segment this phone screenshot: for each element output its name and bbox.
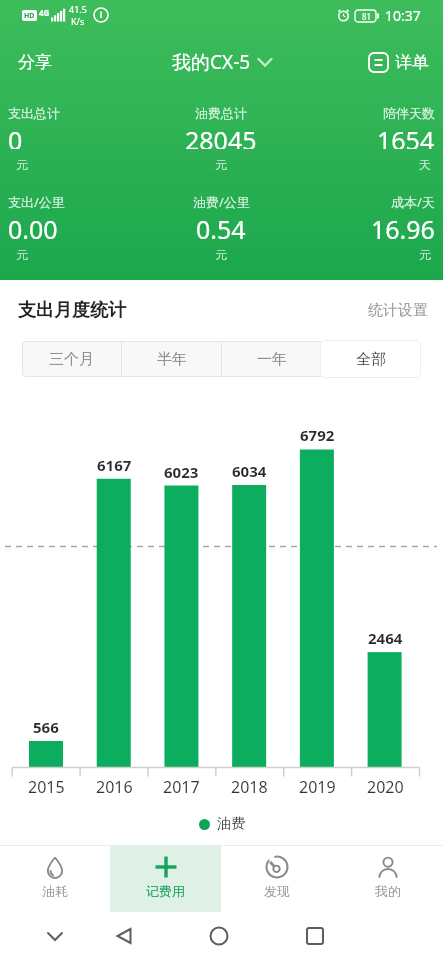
staticText: 6792 [300, 425, 335, 445]
button[interactable] [110, 912, 221, 960]
button[interactable]: 我的 [332, 846, 443, 912]
staticText: 我的CX-5 [172, 49, 251, 75]
staticText: 566 [33, 717, 59, 737]
staticText: 陪伴天数 [383, 105, 435, 121]
staticText: 半年 [157, 350, 187, 369]
staticText: 2017 [163, 776, 200, 798]
staticText: 0.00 [8, 212, 58, 244]
button[interactable] [0, 912, 110, 960]
staticText: 6023 [164, 462, 199, 482]
staticText: 油费 [217, 815, 245, 833]
staticText: 2016 [96, 776, 133, 798]
staticText: 2020 [367, 776, 404, 798]
staticText: 分享 [18, 52, 52, 72]
staticText: 2015 [28, 776, 65, 798]
staticText: 元 [215, 157, 227, 172]
button[interactable]: 详单 [360, 44, 437, 80]
staticText: 记费用 [146, 883, 185, 899]
staticText: 6167 [97, 455, 132, 475]
staticText: 16.96 [371, 212, 435, 244]
button[interactable]: 三个月 [22, 341, 121, 377]
staticText: 28045 [185, 123, 257, 149]
staticText: 0.54 [196, 212, 246, 244]
staticText: 油费/公里 [193, 193, 250, 211]
staticText: 2018 [231, 776, 268, 798]
staticText: 元 [419, 247, 431, 262]
staticText: 1654 [377, 123, 435, 149]
button[interactable]: 我的CX-5 [172, 49, 272, 75]
staticText: 油耗 [42, 883, 68, 899]
button[interactable]: 记费用 [110, 846, 221, 912]
staticText: 支出总计 [8, 105, 60, 121]
staticText: K/s [71, 15, 85, 27]
button[interactable]: 半年 [122, 341, 221, 377]
staticText: 三个月 [49, 350, 94, 369]
staticText: 油费总计 [195, 105, 247, 121]
staticText: 统计设置 [368, 301, 428, 320]
button[interactable]: 统计设置 [368, 301, 428, 320]
staticText: 41.5 [69, 3, 87, 15]
button[interactable]: 油耗 [0, 846, 110, 912]
staticText: 一年 [257, 350, 287, 369]
button[interactable]: 发现 [221, 846, 332, 912]
staticText: 全部 [356, 350, 386, 369]
staticText: HD [24, 11, 35, 21]
staticText: 10:37 [385, 6, 421, 25]
staticText: 支出月度统计 [18, 299, 126, 322]
staticText: 成本/天 [391, 193, 435, 211]
staticText: 4G [39, 7, 50, 18]
button[interactable]: 全部 [320, 340, 421, 378]
staticText: 元 [16, 157, 28, 172]
button[interactable] [221, 912, 332, 960]
staticText: 元 [215, 247, 227, 262]
staticText: 81 [362, 11, 372, 22]
staticText: 2464 [368, 628, 403, 648]
staticText: 支出/公里 [8, 193, 65, 211]
staticText: 元 [16, 247, 28, 262]
button[interactable] [322, 341, 421, 377]
staticText: 0 [8, 123, 23, 149]
staticText: 详单 [395, 52, 429, 72]
staticText: 天 [419, 157, 431, 172]
button[interactable]: 一年 [222, 341, 321, 377]
staticText: 6034 [232, 461, 267, 481]
staticText: 2019 [299, 776, 336, 798]
staticText: 发现 [264, 883, 290, 899]
button[interactable]: 分享 [10, 44, 60, 80]
staticText: 我的 [375, 883, 401, 899]
